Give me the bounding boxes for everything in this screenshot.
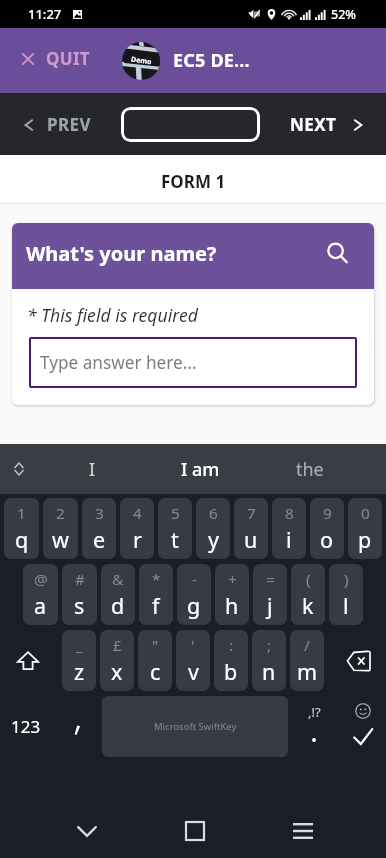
- staticText: £: [113, 635, 122, 656]
- button[interactable]: NEXT: [290, 113, 365, 136]
- staticText: 7: [247, 503, 256, 524]
- staticText: +: [228, 569, 237, 590]
- staticText: u: [244, 525, 258, 554]
- button[interactable]: 123: [0, 696, 52, 757]
- staticText: ': [191, 635, 195, 656]
- staticText: h: [225, 591, 239, 620]
- button[interactable]: Recents: [276, 804, 330, 858]
- button[interactable]: 5: [158, 498, 192, 559]
- staticText: Type answer here...: [40, 351, 197, 374]
- staticText: QUIT: [46, 47, 90, 70]
- staticText: 11:27: [28, 5, 62, 23]
- staticText: 8: [285, 503, 294, 524]
- button[interactable]: (: [291, 564, 325, 625]
- staticText: the: [296, 457, 324, 482]
- staticText: s: [74, 591, 85, 620]
- button[interactable]: 7: [234, 498, 268, 559]
- button[interactable]: 2: [43, 498, 78, 559]
- staticText: 52%: [331, 6, 356, 23]
- button[interactable]: ': [176, 630, 210, 691]
- staticText: 5: [171, 503, 180, 524]
- staticText: ": [152, 635, 159, 656]
- staticText: _: [76, 635, 83, 656]
- staticText: j: [267, 591, 273, 620]
- staticText: c: [150, 657, 161, 686]
- staticText: @: [34, 569, 48, 590]
- staticText: k: [302, 591, 314, 620]
- staticText: PREV: [47, 113, 91, 136]
- staticText: o: [320, 525, 334, 554]
- button[interactable]: ": [138, 630, 172, 691]
- button[interactable]: 9: [310, 498, 344, 559]
- button[interactable]: Shift: [2, 630, 60, 691]
- button[interactable]: PREV: [22, 113, 91, 136]
- staticText: 2: [56, 503, 65, 524]
- staticText: i: [286, 525, 292, 554]
- button[interactable]: #: [62, 564, 97, 625]
- button[interactable]: £: [100, 630, 134, 691]
- staticText: d: [111, 591, 125, 620]
- button[interactable]: Backspace: [326, 630, 384, 691]
- button[interactable]: Type answer here...: [29, 337, 357, 388]
- staticText: g: [187, 591, 201, 620]
- staticText: 123: [11, 715, 41, 738]
- staticText: 4: [133, 503, 142, 524]
- button[interactable]: :: [214, 630, 248, 691]
- staticText: f: [152, 591, 160, 620]
- staticText: x: [111, 657, 123, 686]
- button[interactable]: _: [62, 630, 96, 691]
- staticText: ;: [267, 635, 272, 656]
- button[interactable]: /: [290, 630, 324, 691]
- button[interactable]: Expand suggestions: [0, 444, 38, 494]
- button[interactable]: *: [139, 564, 173, 625]
- button[interactable]: Search: [320, 238, 356, 274]
- button[interactable]: =: [253, 564, 287, 625]
- staticText: n: [262, 657, 276, 686]
- button[interactable]: @: [23, 564, 58, 625]
- button[interactable]: Punctuation: [288, 696, 340, 757]
- staticText: Microsoft SwiftKey: [154, 720, 237, 733]
- button[interactable]: +: [215, 564, 249, 625]
- staticText: l: [343, 591, 349, 620]
- staticText: EC5 DE...: [173, 48, 250, 73]
- button[interactable]: Microsoft SwiftKey: [102, 696, 288, 757]
- button[interactable]: Comma: [52, 696, 102, 757]
- staticText: 3: [95, 503, 104, 524]
- button[interactable]: QUIT: [22, 47, 90, 70]
- button[interactable]: What's your name?: [12, 223, 374, 289]
- staticText: I: [89, 457, 96, 482]
- staticText: t: [171, 525, 179, 554]
- button[interactable]: I am: [146, 444, 255, 494]
- staticText: What's your name?: [26, 240, 217, 267]
- staticText: 9: [323, 503, 332, 524]
- button[interactable]: Progress: [121, 107, 260, 142]
- button[interactable]: Home: [168, 804, 222, 858]
- button[interactable]: Back: [60, 804, 114, 858]
- button[interactable]: 4: [120, 498, 154, 559]
- button[interactable]: -: [177, 564, 211, 625]
- staticText: * This field is required: [27, 303, 198, 327]
- button[interactable]: 1: [4, 498, 39, 559]
- staticText: #: [75, 569, 85, 590]
- button[interactable]: ): [329, 564, 363, 625]
- staticText: 1: [17, 503, 26, 524]
- button[interactable]: 8: [272, 498, 306, 559]
- button[interactable]: the: [255, 444, 364, 494]
- button[interactable]: 0: [348, 498, 382, 559]
- staticText: (: [306, 569, 311, 590]
- staticText: 6: [209, 503, 218, 524]
- button[interactable]: I: [38, 444, 146, 494]
- staticText: *: [152, 569, 161, 590]
- staticText: r: [133, 525, 142, 554]
- staticText: ,!?: [308, 703, 321, 721]
- staticText: 0: [361, 503, 370, 524]
- other: Project logo: [122, 42, 160, 80]
- button[interactable]: 3: [82, 498, 116, 559]
- button[interactable]: ;: [252, 630, 286, 691]
- staticText: m: [297, 657, 318, 686]
- staticText: =: [266, 569, 275, 590]
- button[interactable]: &: [101, 564, 135, 625]
- button[interactable]: 6: [196, 498, 230, 559]
- button[interactable]: Enter: [340, 696, 386, 757]
- staticText: -: [192, 569, 197, 590]
